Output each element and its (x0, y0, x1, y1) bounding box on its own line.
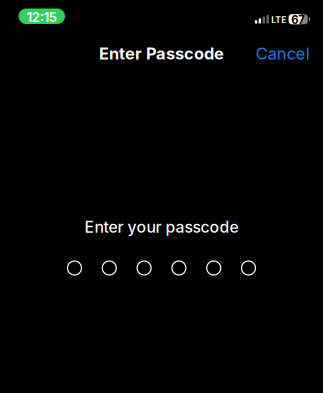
staticText: 67 (291, 13, 305, 27)
staticText: LTE (271, 15, 286, 25)
button[interactable]: Cancel (248, 36, 317, 70)
staticText: Cancel (256, 43, 310, 63)
staticText: 12:15 (27, 10, 57, 25)
staticText: Enter Passcode (99, 43, 224, 63)
staticText: Enter your passcode (84, 217, 238, 237)
